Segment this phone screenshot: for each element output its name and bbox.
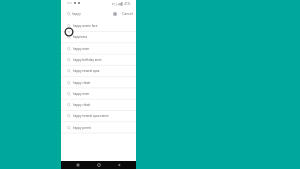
- button[interactable]: happy: [61, 8, 136, 20]
- staticText: happy anim: [73, 92, 90, 96]
- button[interactable]: happy birthday anim: [67, 54, 136, 65]
- button[interactable]: Back: [117, 163, 121, 167]
- staticText: ▾ □ ▴ ▮▌ 41%: [112, 2, 131, 6]
- staticText: happy chiwit: [73, 103, 91, 107]
- button[interactable]: Cancel: [122, 11, 133, 16]
- staticText: happy: [72, 12, 81, 16]
- button[interactable]: happy anime face: [67, 20, 136, 31]
- button[interactable]: happy anim: [67, 88, 136, 99]
- staticText: happy newest ayaa: [73, 69, 100, 73]
- button[interactable]: happy newest ayaa anime: [67, 110, 136, 121]
- staticText: happy birthday anim: [73, 58, 102, 62]
- staticText: happy anime face: [73, 24, 98, 28]
- staticText: happy chiwit: [73, 81, 91, 85]
- button[interactable]: happy pormt: [67, 122, 136, 133]
- button[interactable]: Voice search: [113, 12, 117, 16]
- staticText: happy anim: [73, 47, 90, 51]
- staticText: happiness: [73, 35, 88, 39]
- staticText: happy newest ayaa anime: [73, 114, 109, 118]
- button[interactable]: happiness: [67, 31, 136, 42]
- staticText: happy pormt: [73, 126, 91, 130]
- staticText: Cancel: [122, 11, 133, 16]
- button[interactable]: happy chiwit: [67, 77, 136, 88]
- button[interactable]: Recents: [76, 163, 80, 167]
- button[interactable]: happy newest ayaa: [67, 65, 136, 76]
- button[interactable]: happy anim: [67, 43, 136, 54]
- button[interactable]: happy chiwit: [67, 99, 136, 110]
- button[interactable]: Home: [97, 163, 101, 167]
